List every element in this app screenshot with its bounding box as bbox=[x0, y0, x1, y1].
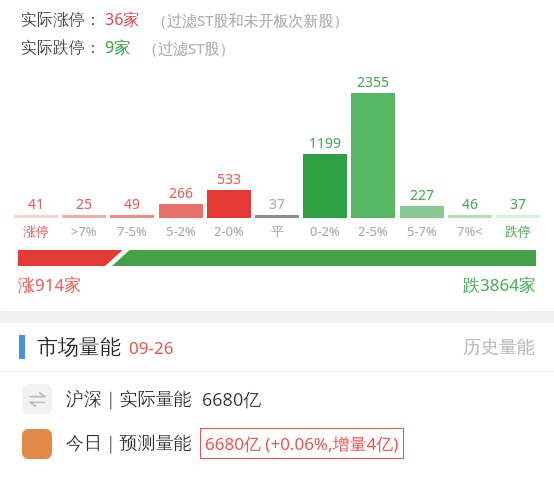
staticText: 0-2% bbox=[310, 222, 340, 240]
staticText: 实际涨停： bbox=[21, 10, 101, 30]
staticText: 09-26 bbox=[129, 336, 174, 359]
staticText: 49 bbox=[124, 194, 141, 213]
staticText: 227 bbox=[410, 185, 435, 204]
staticText: 7%< bbox=[457, 222, 483, 240]
staticText: 2355 bbox=[357, 72, 390, 91]
staticText: 37 bbox=[510, 194, 527, 213]
staticText: 平 bbox=[271, 223, 284, 239]
staticText: 今日｜预测量能 bbox=[66, 432, 192, 455]
staticText: 1199 bbox=[309, 133, 342, 152]
staticText: 5-2% bbox=[166, 222, 196, 240]
staticText: 市场量能 bbox=[37, 334, 121, 360]
staticText: 沪深｜实际量能 bbox=[66, 388, 192, 411]
staticText: 涨914家 bbox=[18, 273, 82, 296]
staticText: 7-5% bbox=[117, 222, 147, 240]
button[interactable]: 今日预测 bbox=[22, 428, 532, 459]
staticText: 2-5% bbox=[358, 222, 388, 240]
staticText: 实际跌停： bbox=[21, 38, 101, 58]
staticText: 6680亿 (+0.06%,增量4亿) bbox=[205, 432, 399, 455]
staticText: 涨停 bbox=[23, 223, 49, 239]
staticText: 2-0% bbox=[214, 222, 244, 240]
staticText: 41 bbox=[28, 194, 45, 213]
staticText: 36家 bbox=[105, 8, 140, 30]
other: 今日预测 bbox=[22, 429, 52, 459]
staticText: 历史量能 bbox=[463, 336, 535, 359]
staticText: 25 bbox=[76, 194, 93, 213]
staticText: >7% bbox=[71, 222, 97, 240]
staticText: 6680亿 bbox=[202, 387, 262, 412]
other: 沪深切换 bbox=[22, 384, 52, 414]
staticText: 46 bbox=[462, 194, 479, 213]
button[interactable]: 沪深切换 bbox=[22, 384, 532, 414]
staticText: （过滤ST股） bbox=[143, 38, 235, 58]
staticText: 533 bbox=[217, 169, 242, 188]
staticText: 跌停 bbox=[505, 223, 531, 239]
staticText: 5-7% bbox=[407, 222, 437, 240]
staticText: 37 bbox=[269, 194, 286, 213]
staticText: 9家 bbox=[105, 36, 131, 58]
staticText: 跌3864家 bbox=[463, 273, 536, 296]
staticText: （过滤ST股和未开板次新股） bbox=[152, 10, 349, 30]
button[interactable]: 市场量能 bbox=[0, 323, 554, 371]
staticText: 266 bbox=[169, 183, 194, 202]
